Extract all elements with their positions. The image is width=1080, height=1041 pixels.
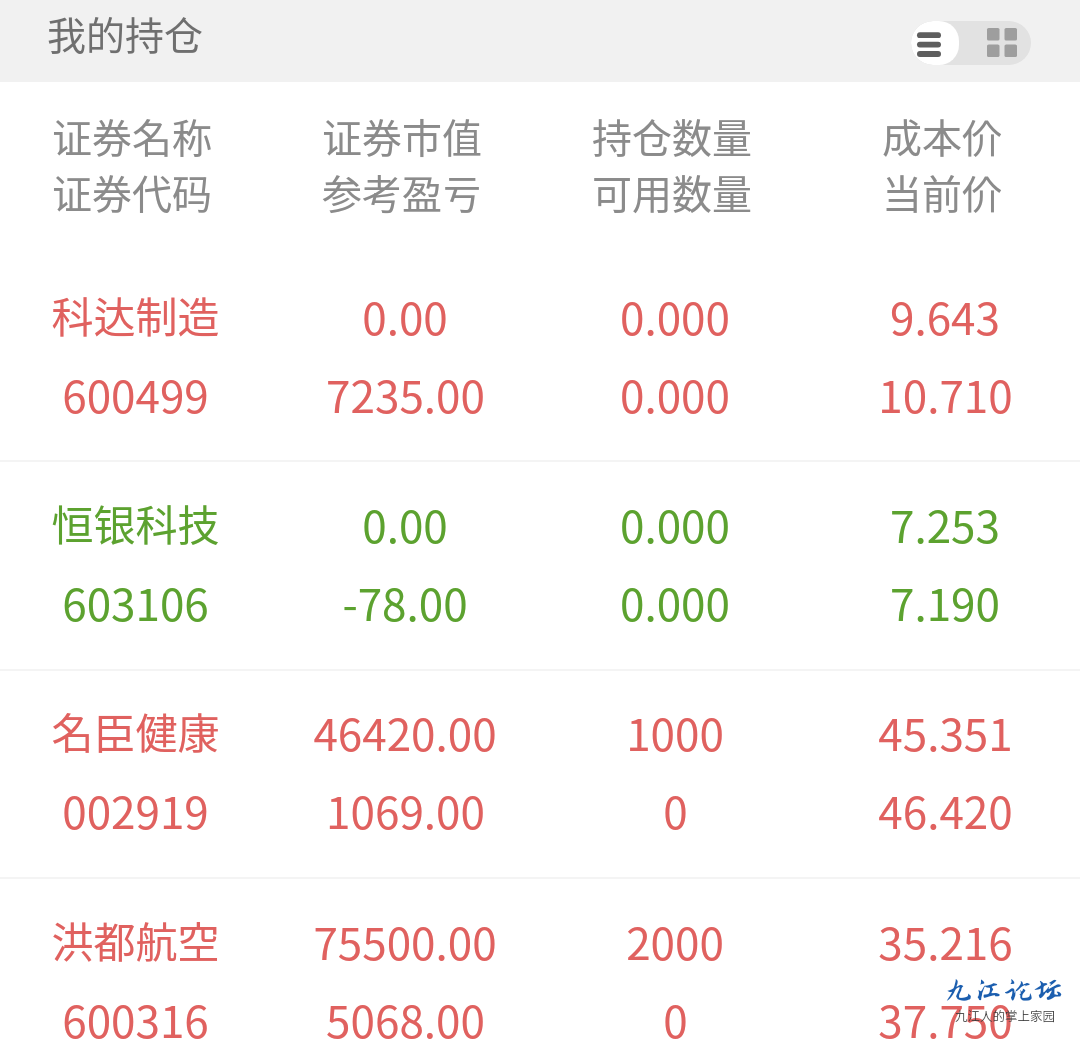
staticText: 名臣健康 <box>51 700 220 761</box>
button[interactable] <box>0 458 1080 666</box>
staticText: 九江人的掌上家园 <box>955 1006 1056 1024</box>
staticText: 37.750 <box>878 987 1013 1041</box>
staticText: 证券市值 <box>322 107 482 165</box>
staticText: -78.00 <box>342 570 468 634</box>
staticText: 成本价 <box>882 107 1002 165</box>
staticText: 600499 <box>62 362 209 426</box>
staticText: 7.253 <box>890 492 1000 556</box>
staticText: 9.643 <box>890 284 1000 348</box>
staticText: 证券名称 <box>52 107 212 165</box>
staticText: 35.216 <box>878 909 1013 973</box>
staticText: 0.000 <box>620 362 730 426</box>
staticText: 恒银科技 <box>51 492 220 553</box>
staticText: 002919 <box>62 778 209 842</box>
staticText: 603106 <box>62 570 209 634</box>
button[interactable]: Grid view <box>959 21 1031 65</box>
staticText: 5068.00 <box>326 987 485 1041</box>
staticText: 10.710 <box>878 362 1013 426</box>
staticText: 46420.00 <box>313 700 497 764</box>
staticText: 0.000 <box>620 492 730 556</box>
staticText: 持仓数量 <box>592 107 752 165</box>
staticText: 0.00 <box>362 492 448 556</box>
staticText: 600316 <box>62 987 209 1041</box>
button[interactable] <box>0 250 1080 458</box>
button[interactable]: List view <box>911 21 959 65</box>
staticText: 46.420 <box>878 778 1013 842</box>
staticText: 45.351 <box>878 700 1013 764</box>
staticText: 可用数量 <box>592 163 752 221</box>
staticText: 当前价 <box>882 163 1002 221</box>
staticText: 0.000 <box>620 570 730 634</box>
staticText: 1000 <box>626 700 724 764</box>
staticText: 7.190 <box>890 570 1000 634</box>
staticText: 2000 <box>626 909 724 973</box>
staticText: 0 <box>663 778 688 842</box>
staticText: 0 <box>663 987 688 1041</box>
staticText: 洪都航空 <box>51 909 220 970</box>
staticText: 1069.00 <box>326 778 485 842</box>
staticText: 证券代码 <box>52 163 212 221</box>
staticText: 7235.00 <box>326 362 485 426</box>
staticText: 九江论坛 <box>944 974 1063 1007</box>
staticText: 参考盈亏 <box>322 163 482 221</box>
staticText: 0.000 <box>620 284 730 348</box>
button[interactable] <box>0 875 1080 1041</box>
staticText: 科达制造 <box>51 284 220 345</box>
button[interactable] <box>0 667 1080 875</box>
staticText: 0.00 <box>362 284 448 348</box>
staticText: 我的持仓 <box>47 5 204 61</box>
staticText: 75500.00 <box>313 909 497 973</box>
